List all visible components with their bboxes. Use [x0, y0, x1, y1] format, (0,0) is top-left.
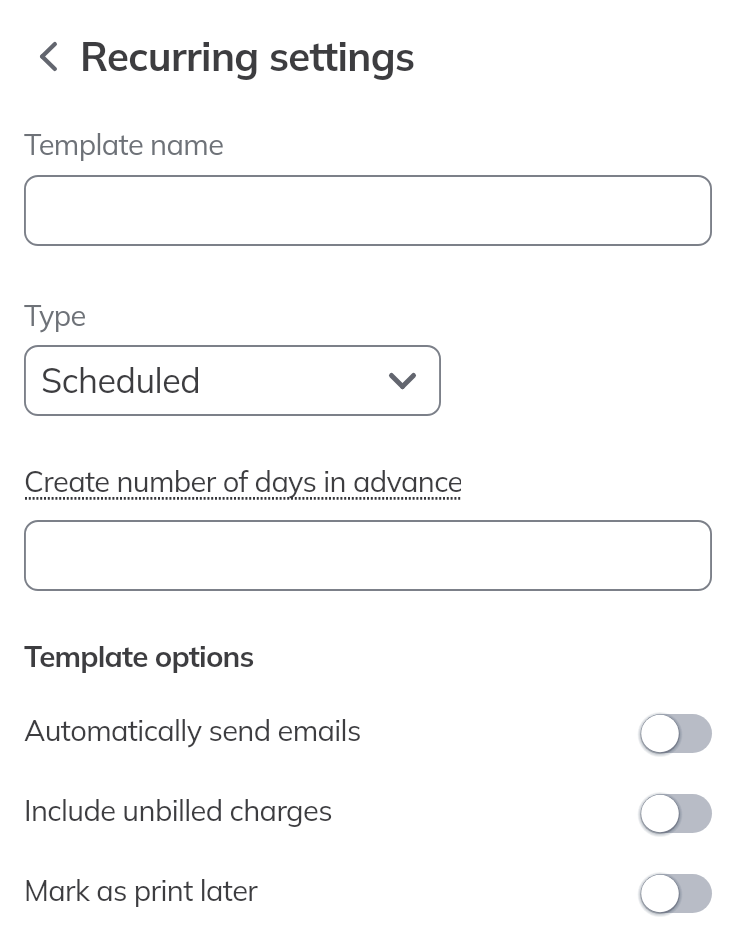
staticText: Automatically send emails — [24, 712, 361, 748]
staticText: Type — [24, 297, 86, 333]
button[interactable]: Include unbilled charges — [0, 786, 740, 858]
staticText: Create number of days in advance — [24, 463, 461, 499]
button[interactable]: Scheduled — [24, 345, 441, 416]
button[interactable]: Create number of days in advance — [24, 463, 461, 507]
staticText: Recurring settings — [80, 31, 415, 81]
staticText: Template options — [24, 637, 254, 674]
button[interactable] — [24, 520, 712, 591]
button[interactable]: Back — [20, 28, 76, 84]
staticText: Include unbilled charges — [24, 792, 332, 828]
button[interactable]: Mark as print later — [0, 866, 740, 938]
button[interactable]: Automatically send emails — [0, 706, 740, 778]
staticText: Template name — [24, 126, 224, 162]
button[interactable] — [24, 175, 712, 246]
staticText: Scheduled — [41, 359, 201, 402]
staticText: Mark as print later — [24, 872, 258, 908]
